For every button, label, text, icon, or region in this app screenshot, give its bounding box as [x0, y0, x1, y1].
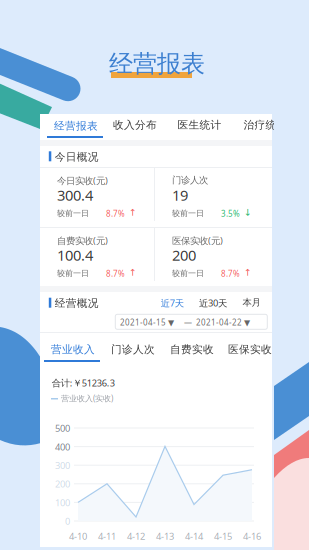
button[interactable]: 医生统计	[171, 114, 227, 136]
staticText: ↓	[244, 207, 252, 218]
staticText: 4-15	[214, 530, 232, 542]
staticText: 8.7%	[106, 268, 125, 279]
button[interactable]: 近7天	[161, 297, 184, 309]
staticText: 较前一日	[172, 268, 204, 278]
staticText: 0	[65, 515, 70, 527]
staticText: 4-12	[127, 530, 145, 542]
staticText: ↑	[129, 267, 137, 278]
staticText: 4-14	[185, 530, 203, 542]
staticText: —	[184, 317, 192, 328]
staticText: 医保实收	[228, 343, 272, 356]
staticText: 今日概况	[55, 150, 99, 163]
staticText: 自费实收(元)	[57, 234, 108, 247]
staticText: 近7天	[161, 297, 184, 309]
button[interactable]: 医保实收	[228, 343, 272, 356]
button[interactable]: 本月	[242, 297, 260, 308]
staticText: 近30天	[199, 297, 227, 309]
staticText: 100	[55, 496, 70, 509]
staticText: 300.4	[57, 185, 93, 205]
staticText: 营业收入(实收)	[61, 393, 113, 404]
staticText: 本月	[242, 297, 260, 308]
button[interactable]: 2021-04-22 ▼	[196, 317, 250, 328]
button[interactable]: 收入分布	[107, 114, 163, 136]
staticText: 合计:￥51236.3	[52, 377, 115, 389]
staticText: 3.5%	[221, 208, 240, 219]
staticText: 经营概况	[55, 297, 99, 310]
staticText: 200	[172, 245, 196, 265]
staticText: 19	[172, 185, 188, 205]
staticText: 300	[55, 459, 70, 472]
staticText: 较前一日	[172, 208, 204, 218]
staticText: 经营报表	[109, 49, 205, 78]
staticText: 4-10	[69, 530, 87, 542]
staticText: 4-13	[156, 530, 174, 542]
staticText: 较前一日	[57, 208, 89, 218]
staticText: 自费实收	[170, 343, 214, 356]
button[interactable]: 治疗统计	[237, 114, 293, 136]
staticText: 医生统计	[177, 118, 221, 131]
button[interactable]: 自费实收	[170, 343, 214, 356]
staticText: 2021-04-15 ▼	[120, 317, 174, 328]
staticText: 经营报表	[54, 119, 98, 133]
staticText: 500	[55, 422, 70, 434]
staticText: 门诊人次	[111, 343, 155, 356]
staticText: 治疗统计	[243, 118, 287, 131]
staticText: 8.7%	[106, 208, 125, 219]
staticText: 较前一日	[57, 268, 89, 278]
staticText: 100.4	[57, 245, 93, 265]
staticText: ↑	[244, 267, 252, 278]
staticText: 4-11	[98, 530, 116, 542]
staticText: 2021-04-22 ▼	[196, 317, 250, 328]
button[interactable]: 经营报表	[47, 114, 103, 140]
staticText: 营业收入	[51, 343, 95, 356]
button[interactable]: 营业收入	[44, 340, 100, 364]
staticText: 200	[55, 478, 70, 490]
button[interactable]: 近30天	[199, 297, 227, 309]
button[interactable]: 2021-04-15 ▼	[120, 317, 174, 328]
staticText: 医保实收(元)	[172, 234, 223, 247]
staticText: 400	[55, 441, 70, 453]
staticText: ↑	[129, 207, 137, 218]
button[interactable]: 门诊人次	[111, 343, 155, 356]
staticText: 4-16	[243, 530, 261, 542]
staticText: 收入分布	[113, 118, 157, 131]
staticText: 8.7%	[221, 268, 240, 279]
staticText: 门诊人次	[172, 174, 208, 186]
staticText: 今日实收(元)	[57, 174, 108, 187]
